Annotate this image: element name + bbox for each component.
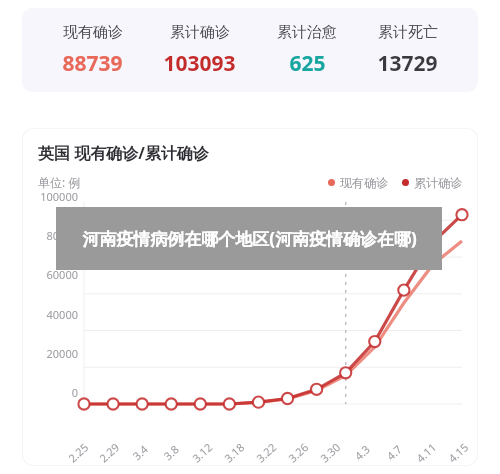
staticText: 3.26 — [285, 440, 311, 465]
staticText: 40000 — [22, 307, 78, 322]
button[interactable]: 累计治愈 — [277, 23, 337, 78]
staticText: 3.12 — [189, 440, 215, 465]
staticText: 4.15 — [445, 440, 471, 465]
staticText: 3.8 — [160, 442, 182, 463]
staticText: 60000 — [22, 267, 78, 282]
staticText: 累计确诊 — [170, 23, 230, 42]
staticText: 累计死亡 — [378, 23, 438, 42]
staticText: 河南疫情病例在哪个地区(河南疫情确诊在哪) — [82, 227, 417, 250]
staticText: 4.11 — [413, 440, 439, 465]
staticText: 3.18 — [221, 440, 247, 465]
staticText: 现有确诊 — [340, 175, 388, 190]
staticText: 3.30 — [317, 440, 343, 465]
staticText: 80000 — [22, 228, 78, 243]
staticText: 累计确诊 — [414, 175, 462, 190]
staticText: 88739 — [62, 49, 123, 78]
button[interactable]: 累计死亡 — [377, 23, 438, 78]
button[interactable]: 英国 现有确诊/累计确诊 — [22, 128, 478, 466]
staticText: 20000 — [22, 346, 78, 361]
staticText: 英国 现有确诊/累计确诊 — [38, 142, 209, 164]
button[interactable]: 现有确诊 — [22, 8, 478, 92]
staticText: 累计治愈 — [277, 23, 337, 42]
button[interactable]: 现有确诊 — [62, 23, 123, 78]
staticText: 2.29 — [96, 440, 122, 465]
staticText: 100000 — [22, 189, 78, 204]
staticText: 现有确诊 — [63, 23, 123, 42]
staticText: 2.25 — [65, 440, 91, 465]
staticText: 3.4 — [129, 442, 151, 463]
staticText: 3.22 — [253, 440, 279, 465]
button[interactable]: 累计确诊 — [163, 23, 236, 78]
staticText: 4.7 — [383, 442, 405, 463]
staticText: 4.3 — [351, 442, 373, 463]
staticText: 103093 — [163, 49, 236, 78]
staticText: 625 — [289, 49, 326, 78]
button[interactable]: 文章标题 — [56, 207, 442, 270]
staticText: 13729 — [377, 49, 438, 78]
staticText: 单位: 例 — [38, 174, 81, 190]
staticText: 0 — [22, 385, 78, 400]
